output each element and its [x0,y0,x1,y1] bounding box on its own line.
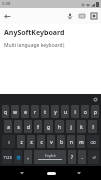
staticText: p [94,109,97,115]
button[interactable]: x [27,135,35,148]
staticText: 5:08 [2,1,11,7]
staticText: l [92,124,94,130]
staticText: y [54,109,57,115]
staticText: b [60,139,63,145]
button[interactable]: . [78,150,86,164]
button[interactable]: Backspace [87,135,99,148]
button[interactable]: s [14,120,22,133]
button[interactable]: Shift [2,135,15,148]
staticText: e [24,109,27,115]
staticText: ⌫ [90,140,96,144]
button[interactable]: Back [15,166,29,180]
button[interactable]: z [17,135,25,148]
button[interactable]: l [88,120,97,133]
staticText: i [74,109,76,115]
staticText: ⏎ [92,155,96,159]
staticText: c [40,139,43,145]
button[interactable]: c [37,135,45,148]
button[interactable]: m [77,135,85,148]
staticText: k [80,124,83,130]
button[interactable]: t [41,105,49,118]
staticText: g [47,124,50,130]
button[interactable]: u [61,105,69,118]
button[interactable]: b [57,135,65,148]
button[interactable]: Stop [88,10,100,22]
button[interactable]: a [4,120,12,133]
button[interactable]: Keyboard settings [91,95,99,103]
staticText: z [20,139,23,145]
staticText: English [45,154,56,158]
button[interactable]: y [51,105,59,118]
staticText: r [34,109,36,115]
button[interactable]: f [34,120,42,133]
button[interactable]: w [11,105,19,118]
staticText: m [79,139,84,145]
staticText: t [44,109,46,115]
button[interactable]: p [91,105,99,118]
staticText: n [70,139,73,145]
staticText: w [13,109,17,115]
staticText: s [17,124,20,130]
staticText: u [64,109,67,115]
staticText: ⇧ [7,140,11,144]
staticText: q [4,109,7,115]
button[interactable]: k [77,120,86,133]
button[interactable]: Home [44,166,58,180]
staticText: Multi language keyboard| [4,42,66,49]
button[interactable]: e [21,105,29,118]
button[interactable]: h [55,120,64,133]
button[interactable]: r [31,105,39,118]
staticText: , [27,154,29,160]
button[interactable]: v [47,135,55,148]
staticText: j [70,124,72,130]
button[interactable]: Keyboard settings [76,10,88,22]
staticText: h [58,124,61,130]
button[interactable]: ? [68,150,76,164]
button[interactable]: Symbols [2,150,12,164]
button[interactable]: j [66,120,75,133]
staticText: ? [71,154,73,160]
button[interactable]: d [24,120,32,133]
button[interactable]: Space, English [34,150,66,164]
staticText: f [37,124,39,130]
button[interactable]: o [81,105,89,118]
staticText: o [84,109,87,115]
staticText: 🌐 [16,155,21,159]
button[interactable]: Recents [72,166,86,180]
staticText: AnySoftKeyboard [4,28,65,38]
button[interactable]: , [24,150,32,164]
staticText: x [30,139,33,145]
button[interactable]: Change language [14,150,22,164]
button[interactable]: Back [1,10,13,22]
staticText: d [27,124,30,130]
staticText: v [50,139,53,145]
button[interactable]: q [2,105,9,118]
button[interactable]: Voice input [64,10,76,22]
button[interactable]: Enter [88,150,99,164]
staticText: ?123 [3,155,12,160]
staticText: . [81,154,83,160]
button[interactable]: g [44,120,53,133]
staticText: a [7,124,10,130]
button[interactable]: i [71,105,79,118]
button[interactable]: n [67,135,75,148]
